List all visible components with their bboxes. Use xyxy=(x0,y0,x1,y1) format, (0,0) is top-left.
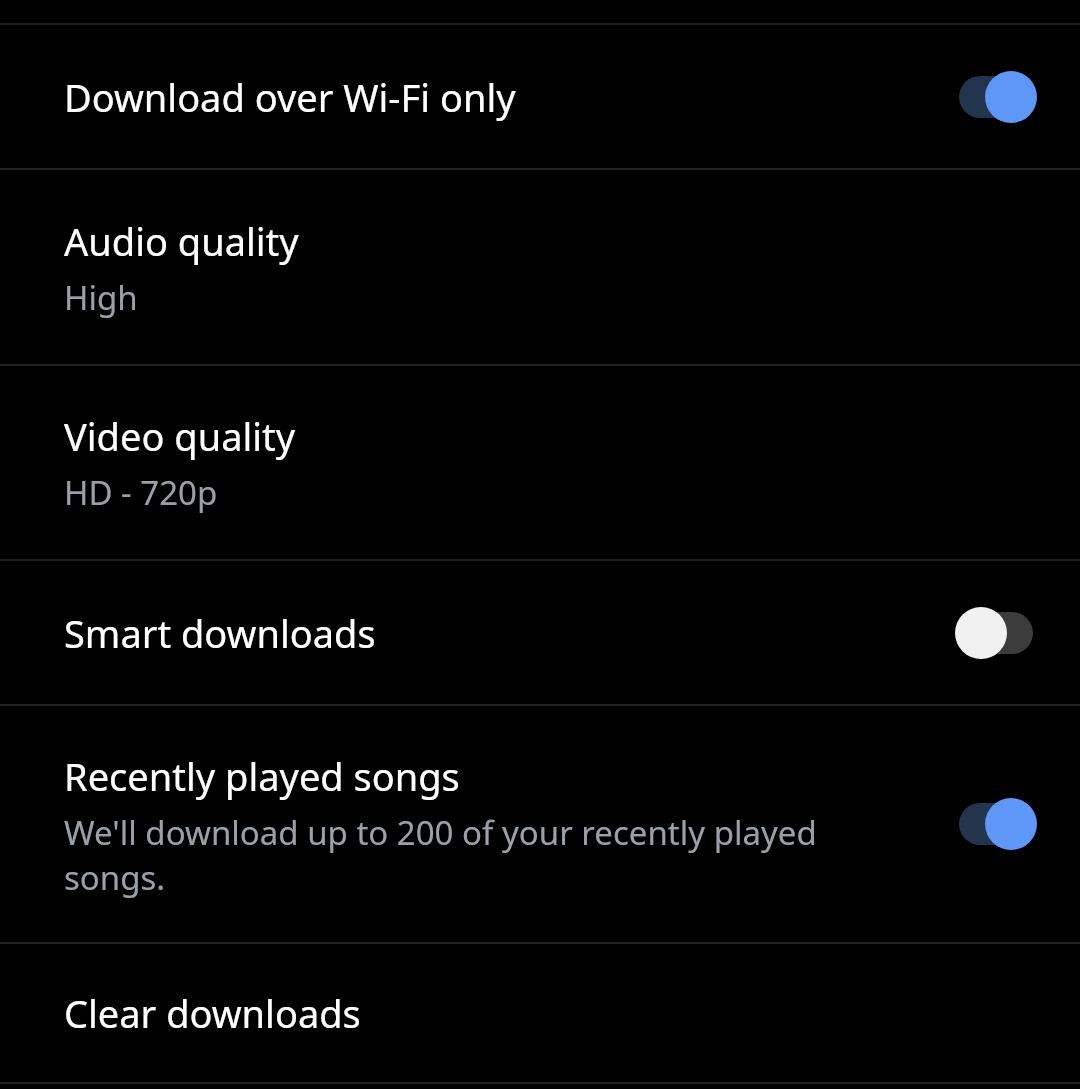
other: Recently played songs toggle xyxy=(948,796,1044,852)
staticText: We'll download up to 200 of your recentl… xyxy=(64,810,864,899)
button[interactable]: Download over Wi-Fi only xyxy=(0,25,1080,168)
staticText: HD - 720p xyxy=(64,470,218,515)
other: Smart downloads toggle xyxy=(948,605,1044,661)
staticText: Audio quality xyxy=(64,215,299,267)
staticText: High xyxy=(64,275,138,320)
staticText: Clear downloads xyxy=(64,987,361,1039)
staticText: Recently played songs xyxy=(64,750,460,802)
button[interactable]: Video quality xyxy=(0,366,1080,559)
other: Download over Wi-Fi only toggle xyxy=(948,69,1044,125)
staticText: Download over Wi-Fi only xyxy=(64,71,516,123)
button[interactable]: Clear downloads xyxy=(0,944,1080,1082)
staticText: Smart downloads xyxy=(64,607,376,659)
button[interactable]: Smart downloads xyxy=(0,561,1080,704)
button[interactable]: Audio quality xyxy=(0,170,1080,364)
button[interactable]: Recently played songs xyxy=(0,706,1080,942)
staticText: Video quality xyxy=(64,410,296,462)
